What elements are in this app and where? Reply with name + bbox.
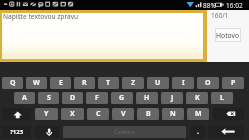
staticText: H (144, 93, 150, 103)
staticText: F (95, 93, 99, 103)
button[interactable]: Z (122, 77, 144, 89)
button[interactable]: G (111, 92, 133, 104)
button[interactable]: O (197, 77, 219, 89)
staticText: S (47, 93, 51, 103)
staticText: Z (131, 78, 136, 88)
staticText: Y (44, 109, 49, 119)
button[interactable]: X (61, 108, 84, 120)
button[interactable]: Shift (2, 108, 31, 120)
button[interactable]: B (137, 108, 159, 120)
button[interactable]: Voice input (35, 126, 59, 138)
button[interactable]: H (136, 92, 158, 104)
button[interactable]: C (87, 108, 109, 120)
staticText: I (182, 78, 185, 88)
staticText: Napište textovou zprávu (3, 12, 79, 21)
button[interactable]: A (14, 92, 35, 104)
staticText: B (146, 109, 151, 119)
staticText: O (205, 78, 211, 88)
button[interactable]: P (222, 77, 244, 89)
button[interactable]: Enter (208, 126, 244, 138)
staticText: V (121, 109, 126, 119)
staticText: 160/1 (211, 11, 229, 20)
staticText: M (195, 109, 202, 119)
staticText: J (171, 93, 174, 103)
button[interactable]: L (211, 92, 233, 104)
button[interactable]: S (38, 92, 59, 104)
staticText: . (197, 127, 199, 137)
staticText: X (70, 109, 75, 119)
staticText: Q (10, 78, 16, 88)
button[interactable]: K (186, 92, 208, 104)
staticText: P (231, 78, 236, 88)
staticText: 88% (203, 1, 216, 10)
staticText: N (170, 109, 176, 119)
button[interactable]: Hotovo (215, 28, 241, 42)
staticText: L (220, 93, 224, 103)
staticText: W (33, 78, 40, 88)
staticText: G (119, 93, 125, 103)
staticText: C (96, 109, 101, 119)
button[interactable]: ?123 (2, 126, 31, 138)
staticText: A (22, 93, 27, 103)
staticText: T (106, 78, 111, 88)
staticText: D (70, 93, 76, 103)
staticText: ?123 (10, 128, 24, 136)
button[interactable]: Napište textovou zprávu (2, 13, 203, 59)
staticText: K (195, 93, 200, 103)
button[interactable]: . (190, 126, 205, 138)
button[interactable]: R (74, 77, 95, 89)
button[interactable]: W (26, 77, 47, 89)
button[interactable]: N (162, 108, 184, 120)
staticText: E (59, 78, 63, 88)
staticText: R (82, 78, 87, 88)
staticText: Čeština (114, 128, 135, 136)
button[interactable]: T (98, 77, 119, 89)
button[interactable]: M (187, 108, 209, 120)
button[interactable]: Q (2, 77, 23, 89)
button[interactable]: Y (35, 108, 58, 120)
button[interactable]: F (86, 92, 108, 104)
button[interactable]: U (147, 77, 169, 89)
button[interactable]: V (112, 108, 134, 120)
button[interactable]: Backspace (213, 108, 244, 120)
staticText: 16:02 (226, 1, 243, 10)
button[interactable]: J (161, 92, 183, 104)
button[interactable]: E (50, 77, 71, 89)
staticText: Hotovo (216, 31, 240, 40)
button[interactable]: D (62, 92, 83, 104)
button[interactable]: I (172, 77, 194, 89)
staticText: U (155, 78, 161, 88)
